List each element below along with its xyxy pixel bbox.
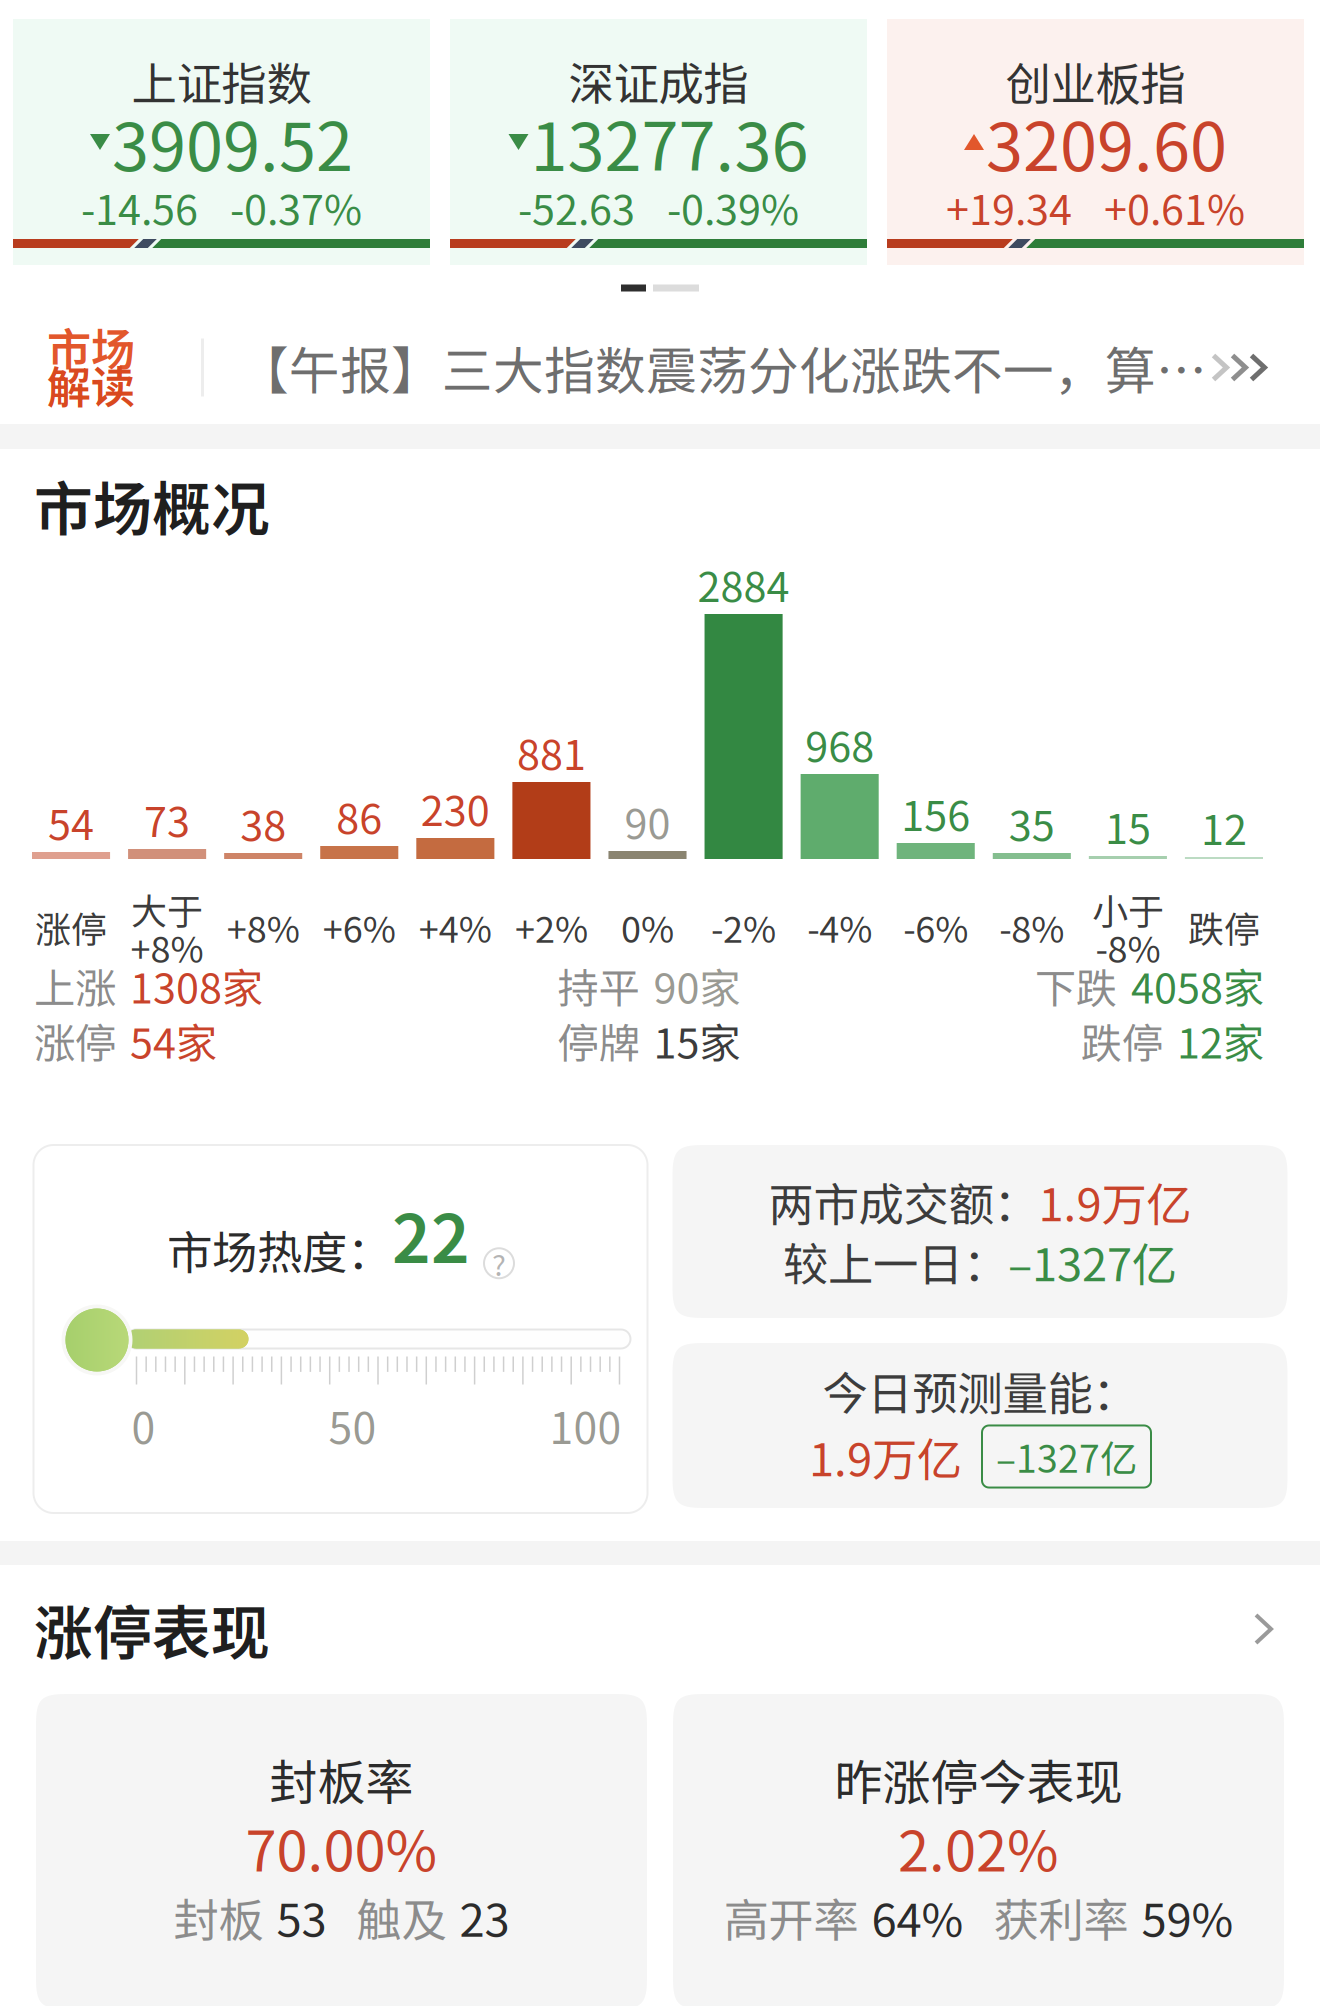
staticText: +8% <box>227 901 300 953</box>
staticText: 跌停 <box>1188 901 1260 953</box>
staticText: 解读 <box>47 352 135 416</box>
staticText: 触及 <box>356 1884 446 1950</box>
staticText: 4058家 <box>1131 956 1264 1015</box>
staticText: -0.37% <box>230 177 362 237</box>
staticText: 两市成交额： <box>768 1169 1038 1234</box>
button[interactable]: 上证指数 <box>13 19 430 265</box>
staticText: 大于 <box>131 883 203 935</box>
staticText: -2% <box>711 901 776 953</box>
staticText: 小于 <box>1092 883 1164 935</box>
staticText: +19.34 <box>946 177 1072 237</box>
staticText: 53 <box>276 1884 326 1950</box>
staticText: -4% <box>807 901 872 953</box>
staticText: 上涨 <box>34 956 116 1015</box>
staticText: 创业板指 <box>1005 48 1185 114</box>
staticText: 50 <box>328 1394 376 1456</box>
button[interactable]: 第一页 <box>621 284 646 291</box>
staticText: 上证指数 <box>131 48 311 114</box>
staticText: +0.61% <box>1104 177 1245 237</box>
staticText: 22 <box>392 1186 470 1282</box>
staticText: 获利率 <box>993 1884 1128 1950</box>
staticText: 881 <box>517 722 586 782</box>
staticText: 12家 <box>1177 1011 1264 1070</box>
staticText: +8% <box>131 921 204 973</box>
staticText: 较上一日： <box>783 1229 1008 1294</box>
button[interactable]: 涨停表现 <box>0 1565 1320 1657</box>
staticText: ? <box>492 1242 506 1284</box>
staticText: 涨停表现 <box>34 1586 270 1671</box>
staticText: 0 <box>131 1394 155 1456</box>
staticText: -52.63 <box>518 177 635 237</box>
staticText: 12 <box>1201 797 1247 857</box>
staticText: 59% <box>1141 1884 1233 1950</box>
staticText: 1.9万亿 <box>1038 1169 1191 1234</box>
staticText: 3909.52 <box>112 94 353 190</box>
button[interactable]: 创业板指 <box>887 19 1304 265</box>
staticText: –1327亿 <box>996 1429 1137 1484</box>
staticText: 2.02% <box>898 1806 1059 1888</box>
staticText: 昨涨停今表现 <box>834 1744 1122 1814</box>
staticText: 涨停 <box>35 901 107 953</box>
button[interactable]: 深证成指 <box>450 19 867 265</box>
staticText: 市场热度： <box>167 1217 392 1282</box>
staticText: 90 <box>624 791 670 851</box>
staticText: 高开率 <box>723 1884 858 1950</box>
staticText: 13277.36 <box>530 94 808 190</box>
staticText: -8% <box>1095 921 1160 973</box>
staticText: 封板 <box>173 1884 263 1950</box>
staticText: 73 <box>144 789 190 849</box>
staticText: 2884 <box>698 554 790 614</box>
staticText: 70.00% <box>245 1806 437 1888</box>
staticText: +2% <box>515 901 588 953</box>
staticText: 市场 <box>47 314 135 378</box>
staticText: 64% <box>871 1884 963 1950</box>
staticText: -0.39% <box>667 177 799 237</box>
staticText: –1327亿 <box>1008 1229 1177 1294</box>
staticText: -8% <box>999 901 1064 953</box>
staticText: 230 <box>421 778 490 838</box>
staticText: 今日预测量能： <box>822 1358 1137 1423</box>
staticText: 968 <box>805 714 874 774</box>
staticText: +6% <box>323 901 396 953</box>
staticText: 54 <box>48 792 94 852</box>
staticText: 35 <box>1009 793 1055 853</box>
staticText: 1308家 <box>130 956 263 1015</box>
staticText: -6% <box>903 901 968 953</box>
staticText: 【午报】三大指数震荡分化涨跌不一，算力硬件… <box>238 331 1212 404</box>
staticText: 持平 <box>557 956 639 1015</box>
staticText: 86 <box>336 786 382 846</box>
button[interactable]: 市场 <box>0 311 1320 424</box>
staticText: 156 <box>901 783 970 843</box>
staticText: 15 <box>1105 796 1151 856</box>
button[interactable]: 封板率 <box>36 1694 647 2006</box>
staticText: 90家 <box>653 956 740 1015</box>
staticText: +4% <box>419 901 492 953</box>
button[interactable]: 昨涨停今表现 <box>673 1694 1284 2006</box>
staticText: 15家 <box>653 1011 740 1070</box>
button[interactable]: 第二页 <box>653 284 699 291</box>
staticText: 3209.60 <box>986 94 1227 190</box>
staticText: 0% <box>621 901 674 953</box>
staticText: 停牌 <box>557 1011 639 1070</box>
staticText: 38 <box>240 793 286 853</box>
staticText: 54家 <box>130 1011 217 1070</box>
staticText: 100 <box>549 1394 621 1456</box>
staticText: 跌停 <box>1081 1011 1163 1070</box>
staticText: 23 <box>459 1884 509 1950</box>
staticText: -14.56 <box>81 177 198 237</box>
staticText: 市场概况 <box>34 462 270 547</box>
staticText: 封板率 <box>269 1744 413 1814</box>
button[interactable]: 市场热度说明 <box>484 1248 514 1278</box>
staticText: 下跌 <box>1035 956 1117 1015</box>
staticText: 涨停 <box>34 1011 116 1070</box>
staticText: 1.9万亿 <box>809 1424 962 1489</box>
staticText: 深证成指 <box>568 48 748 114</box>
